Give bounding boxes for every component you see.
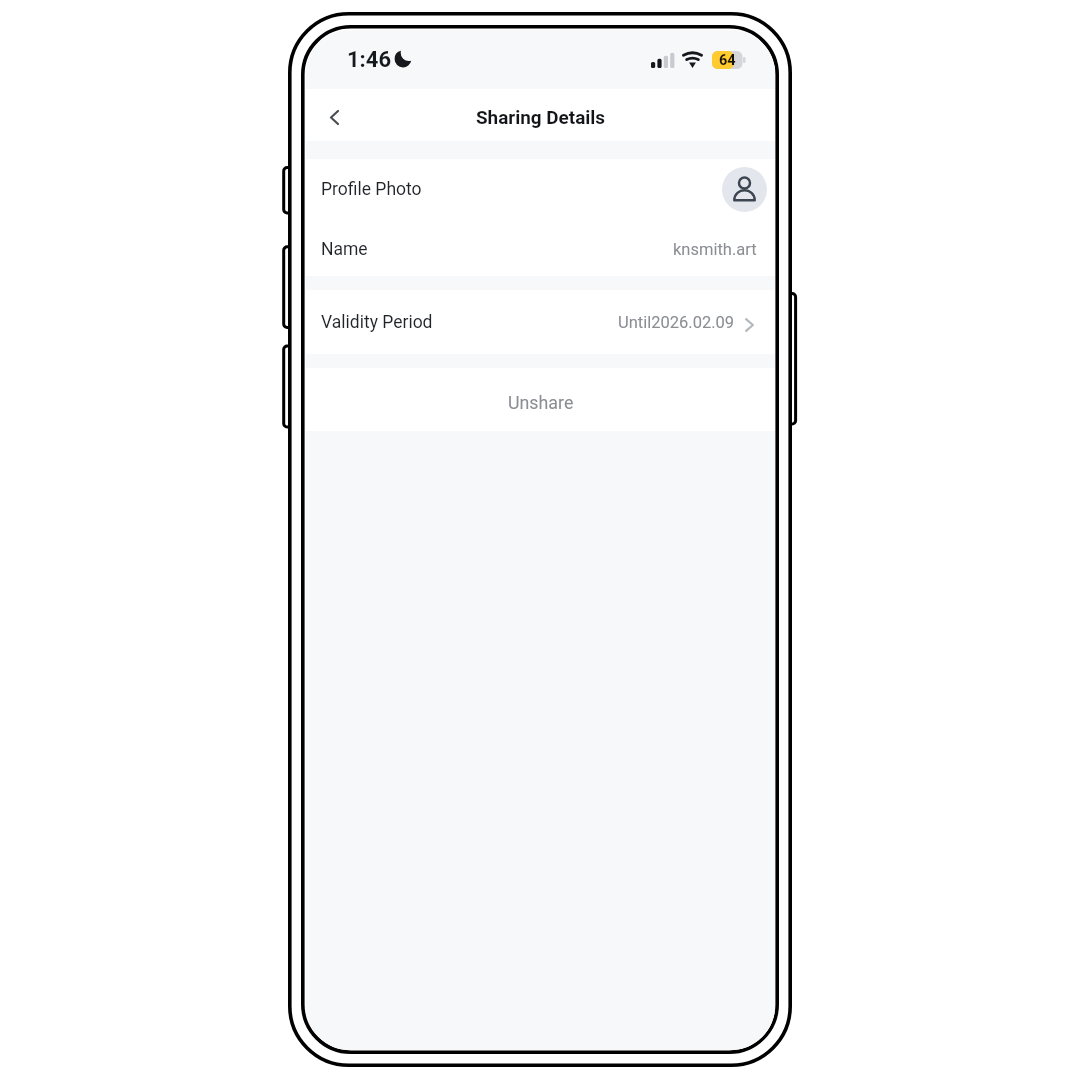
button[interactable]: Profile Photo — [306, 159, 775, 219]
staticText: 64 — [719, 52, 736, 69]
staticText: knsmith.art — [673, 240, 757, 259]
staticText: Sharing Details — [476, 106, 606, 128]
staticText: Validity Period — [321, 312, 433, 333]
button[interactable]: Name — [306, 219, 775, 276]
staticText: Name — [321, 239, 368, 260]
button[interactable]: Validity Period — [306, 290, 775, 354]
button[interactable]: Back — [312, 93, 356, 137]
button[interactable]: Unshare — [306, 368, 775, 431]
staticText: Profile Photo — [321, 179, 422, 200]
staticText: 1:46 — [347, 47, 392, 73]
staticText: Until2026.02.09 — [618, 313, 735, 332]
staticText: Unshare — [508, 392, 574, 413]
